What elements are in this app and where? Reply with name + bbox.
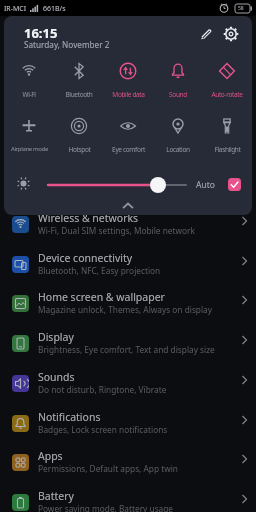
staticText: Permissions, Default apps, App twin (38, 463, 178, 474)
button[interactable] (228, 178, 241, 191)
staticText: IR-MCI (4, 4, 27, 14)
staticText: Auto-rotate (211, 90, 243, 99)
staticText: Device connectivity (38, 251, 133, 265)
button[interactable]: Hotspot (47, 110, 111, 156)
staticText: Home screen & wallpaper (38, 290, 165, 304)
button[interactable] (196, 24, 216, 44)
staticText: 661B/s (43, 4, 66, 14)
button[interactable]: Eye comfort (96, 110, 160, 156)
staticText: Power saving mode, Battery usage (38, 503, 174, 512)
button[interactable]: Airplane mode (4, 110, 61, 156)
staticText: Wi-Fi (22, 90, 36, 99)
staticText: Sound (169, 90, 187, 99)
staticText: Eye comfort (112, 145, 145, 154)
staticText: Saturday, November 2 (24, 39, 110, 50)
staticText: Bluetooth, NFC, Easy projection (38, 265, 161, 276)
staticText: Display (38, 330, 74, 344)
staticText: Hotspot (68, 145, 91, 154)
button[interactable]: Apps (0, 445, 256, 485)
button[interactable]: Sound (146, 55, 210, 101)
button[interactable]: Battery (0, 485, 256, 512)
staticText: Do not disturb, Ringtone, Vibrate (38, 384, 167, 395)
button[interactable]: Notifications (0, 406, 256, 446)
staticText: Magazine unlock, Themes, Always on displ… (38, 304, 212, 315)
staticText: 16:15 (24, 24, 58, 42)
staticText: Badges, Lock screen notifications (38, 424, 168, 435)
staticText: 58 (238, 5, 244, 12)
staticText: Bluetooth (65, 90, 93, 99)
staticText: Brightness, Eye comfort, Text and displa… (38, 344, 215, 355)
button[interactable]: Bluetooth (47, 55, 111, 101)
button[interactable]: Device connectivity (0, 247, 256, 287)
staticText: Flashlight (214, 145, 241, 154)
staticText: Battery (38, 489, 74, 503)
staticText: Location (166, 145, 190, 154)
button[interactable]: Flashlight (195, 110, 252, 156)
staticText: Sounds (38, 370, 75, 384)
button[interactable]: Mobile data (96, 55, 160, 101)
button[interactable]: Wireless & networks (0, 207, 256, 247)
button[interactable]: Display (0, 326, 256, 366)
button[interactable]: Sounds (0, 366, 256, 406)
staticText: Mobile data (112, 90, 145, 99)
staticText: Apps (38, 449, 63, 463)
staticText: Airplane mode (11, 145, 48, 153)
button[interactable] (221, 24, 241, 44)
button[interactable]: Home screen & wallpaper (0, 286, 256, 326)
staticText: Notifications (38, 410, 101, 424)
button[interactable]: Location (146, 110, 210, 156)
button[interactable]: Wi-Fi (4, 55, 61, 101)
button[interactable]: Auto-rotate (195, 55, 252, 101)
staticText: Auto (196, 179, 215, 191)
staticText: Wireless & networks (38, 211, 139, 225)
staticText: Wi-Fi, Dual SIM settings, Mobile network (38, 225, 195, 236)
